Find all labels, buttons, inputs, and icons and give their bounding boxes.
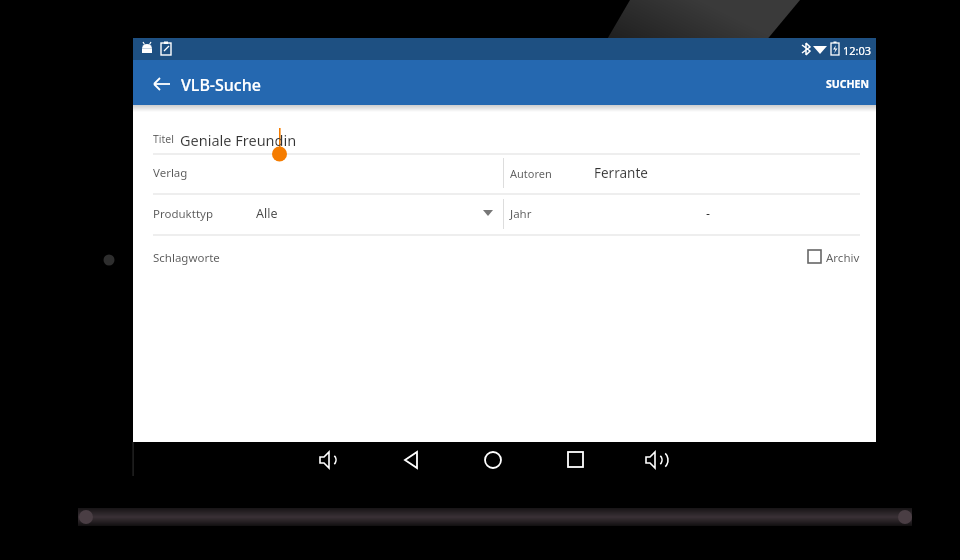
button[interactable] bbox=[153, 195, 503, 234]
button[interactable] bbox=[812, 66, 868, 96]
button[interactable] bbox=[505, 155, 860, 193]
button[interactable]: Back bbox=[394, 442, 430, 478]
staticText: Jahr bbox=[510, 206, 532, 222]
button[interactable] bbox=[153, 236, 653, 274]
button[interactable]: Home bbox=[475, 442, 511, 478]
staticText: Schlagworte bbox=[153, 250, 220, 266]
button[interactable]: Recent apps bbox=[558, 442, 594, 478]
staticText: Autoren bbox=[510, 166, 552, 181]
staticText: Geniale Freundin bbox=[180, 130, 297, 150]
button[interactable]: Volume down bbox=[310, 442, 348, 478]
staticText: Produkttyp bbox=[153, 206, 213, 222]
staticText: Alle bbox=[256, 205, 278, 222]
button[interactable] bbox=[505, 195, 860, 234]
button[interactable]: Volume up bbox=[636, 442, 674, 478]
button[interactable] bbox=[802, 244, 862, 270]
button[interactable] bbox=[153, 114, 860, 153]
button[interactable] bbox=[153, 155, 503, 193]
staticText: - bbox=[706, 205, 711, 222]
button[interactable]: Back bbox=[150, 62, 186, 98]
staticText: Titel bbox=[153, 132, 174, 146]
staticText: SUCHEN bbox=[826, 77, 869, 91]
staticText: Verlag bbox=[153, 165, 188, 181]
staticText: VLB-Suche bbox=[181, 74, 261, 96]
staticText: Archiv bbox=[826, 250, 860, 266]
staticText: Ferrante bbox=[594, 164, 648, 182]
staticText: 12:03 bbox=[843, 43, 872, 58]
